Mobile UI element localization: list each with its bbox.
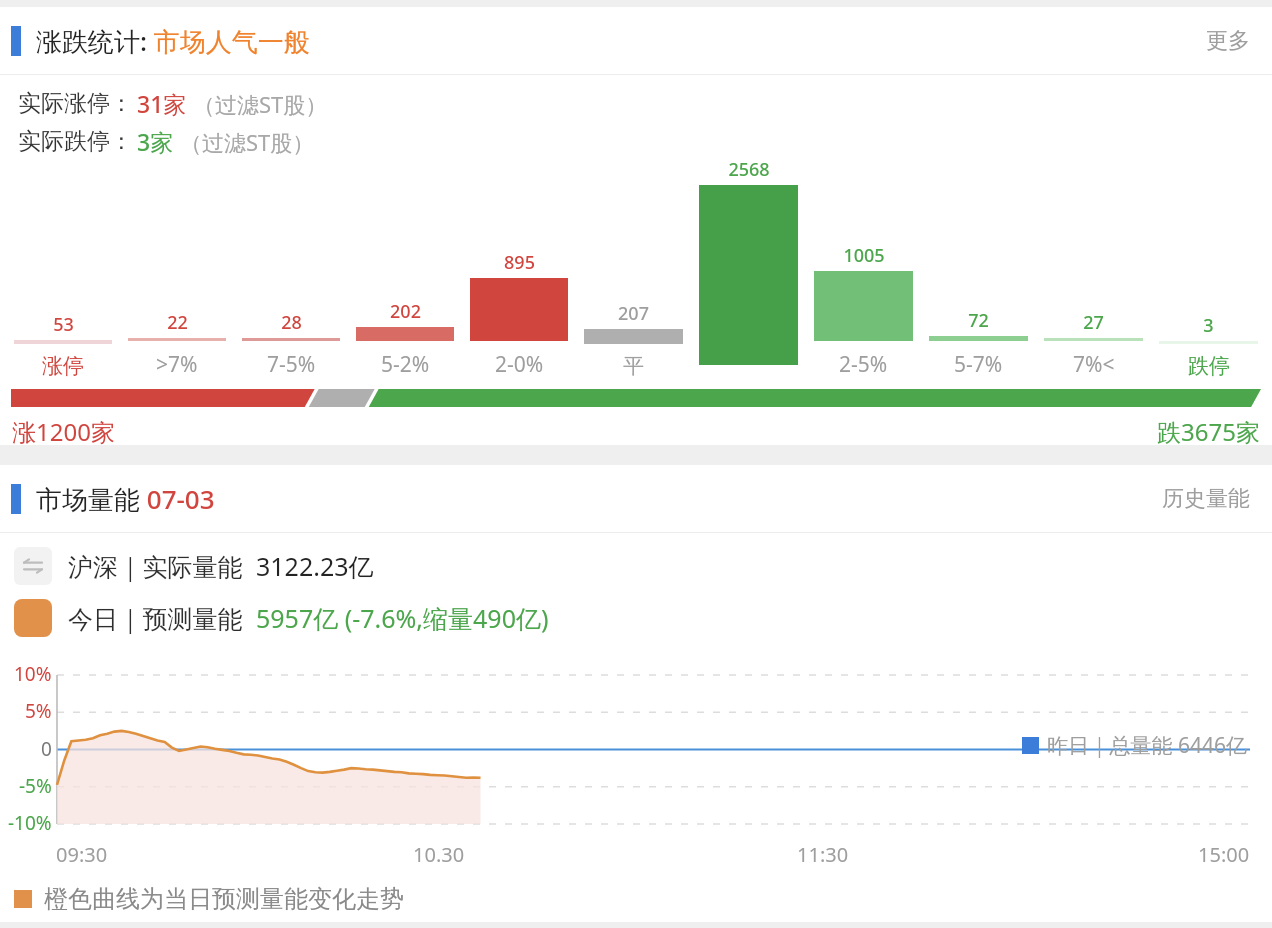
staticText: 10.30 [413, 841, 465, 868]
button[interactable]: 历史量能 [1156, 479, 1256, 519]
staticText: 实际跌停： [18, 127, 133, 156]
staticText: 跌停 [1188, 353, 1230, 379]
button[interactable]: 22 [128, 157, 226, 379]
button[interactable]: 3 [1159, 157, 1258, 379]
staticText: 今日｜预测量能 [68, 601, 256, 635]
staticText: 涨跌统计: 市场人气一般 [36, 23, 310, 59]
button[interactable]: 207 [584, 157, 683, 379]
staticText: 28 [281, 310, 302, 335]
staticText: 11:30 [797, 841, 849, 868]
button[interactable]: 202 [356, 157, 454, 379]
button[interactable]: 2568 [699, 157, 798, 379]
button[interactable]: 更多 [1200, 21, 1256, 61]
staticText: 实际涨停： [18, 89, 133, 118]
button[interactable]: 涨跌统计: 市场人气一般 [0, 7, 1272, 74]
staticText: 2-0% [495, 350, 544, 379]
staticText: 31家 [137, 88, 187, 119]
other: 沪深实际量能 [14, 547, 52, 585]
staticText: 5-7% [954, 350, 1003, 379]
staticText: 昨日｜总量能 6446亿 [1047, 731, 1248, 760]
staticText: 1005 [843, 243, 885, 268]
button[interactable]: 1005 [814, 157, 913, 379]
button[interactable]: 895 [470, 157, 568, 379]
button[interactable]: 72 [929, 157, 1028, 379]
staticText: 涨停 [42, 353, 84, 379]
staticText: -10% [8, 810, 52, 836]
staticText: 5% [25, 698, 52, 724]
button[interactable] [11, 389, 1261, 407]
staticText: 3 [1203, 313, 1214, 338]
staticText: 平 [623, 353, 644, 379]
button[interactable]: 沪深实际量能 [14, 547, 1272, 585]
staticText: 09:30 [56, 841, 108, 868]
button[interactable]: 27 [1044, 157, 1143, 379]
staticText: 15:00 [1198, 841, 1250, 868]
button[interactable]: 28 [242, 157, 340, 379]
staticText: 更多 [1206, 27, 1250, 55]
other: 今日预测 [14, 599, 52, 637]
staticText: （过滤ST股） [180, 127, 315, 157]
staticText: 沪深｜实际量能 [68, 549, 256, 583]
staticText: 3122.23亿 [256, 549, 374, 583]
staticText: >7% [156, 350, 198, 379]
staticText: 橙色曲线为当日预测量能变化走势 [44, 884, 404, 914]
staticText: 207 [618, 301, 649, 326]
staticText: 72 [968, 308, 989, 333]
staticText: 0 [41, 736, 52, 762]
staticText: 跌3675家 [1157, 415, 1260, 445]
staticText: 历史量能 [1162, 485, 1250, 513]
staticText: 5-2% [381, 350, 430, 379]
staticText: 5957亿 (-7.6%,缩量490亿) [256, 601, 549, 635]
staticText: 2568 [728, 157, 770, 182]
staticText: -5% [19, 773, 52, 799]
button[interactable]: 橙色曲线为当日预测量能变化走势 [14, 884, 1272, 914]
staticText: 53 [53, 312, 74, 337]
staticText: 10% [14, 661, 52, 687]
staticText: 3家 [137, 126, 174, 157]
staticText: 895 [504, 250, 535, 275]
staticText: 涨1200家 [12, 415, 115, 445]
staticText: 22 [167, 310, 188, 335]
staticText: 7-5% [267, 350, 316, 379]
staticText: （过滤ST股） [193, 89, 328, 119]
staticText: 2-5% [839, 350, 888, 379]
button[interactable]: 53 [14, 157, 112, 379]
button[interactable]: 昨日｜总量能 6446亿 [1022, 731, 1248, 760]
button[interactable]: 今日预测 [14, 599, 1272, 637]
staticText: 市场量能 07-03 [36, 481, 215, 517]
staticText: 27 [1083, 310, 1104, 335]
staticText: 202 [390, 299, 421, 324]
staticText: 7%< [1073, 350, 1115, 379]
button[interactable]: 市场量能 07-03 [0, 465, 1272, 532]
